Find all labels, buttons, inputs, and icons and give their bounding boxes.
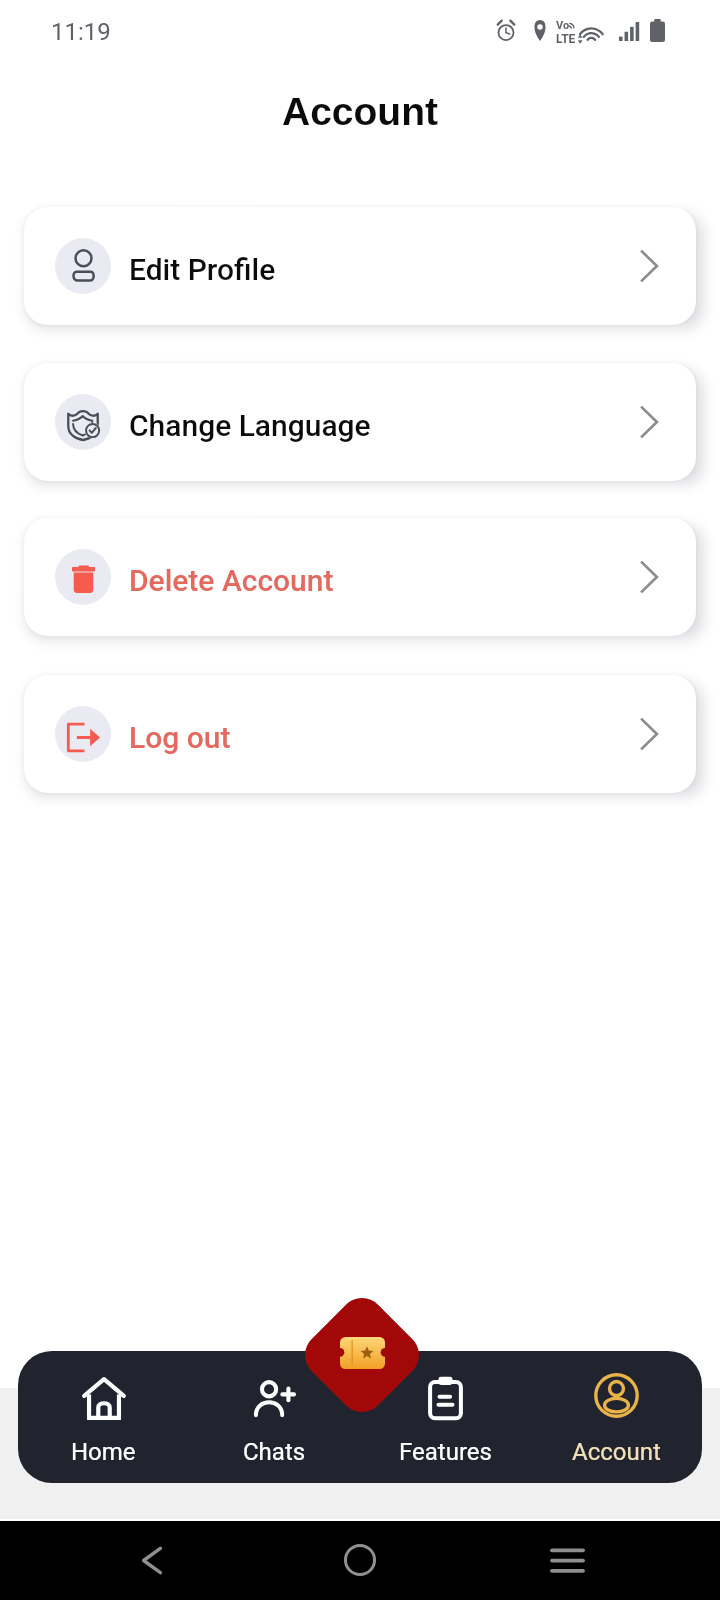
- button[interactable]: Features: [360, 1351, 531, 1483]
- staticText: 11:19: [51, 18, 111, 46]
- button[interactable]: Chats: [189, 1351, 360, 1483]
- button[interactable]: Log out: [24, 675, 696, 793]
- staticText: Features: [399, 1438, 492, 1466]
- staticText: Vo: [556, 19, 570, 32]
- other: Recent apps: [551, 1548, 584, 1573]
- staticText: Account: [572, 1438, 661, 1466]
- button[interactable]: Delete Account: [24, 518, 696, 636]
- staticText: Edit Profile: [129, 252, 276, 287]
- button[interactable]: Tickets: [295, 1288, 428, 1421]
- button[interactable]: Edit Profile: [24, 207, 696, 325]
- other: Home: [344, 1544, 376, 1576]
- button[interactable]: Account: [531, 1351, 702, 1483]
- staticText: Home: [71, 1438, 136, 1466]
- staticText: Chats: [243, 1438, 306, 1466]
- staticText: Change Language: [129, 408, 371, 443]
- staticText: Account: [282, 90, 438, 134]
- other: Back: [142, 1546, 162, 1575]
- button[interactable]: Home: [18, 1351, 189, 1483]
- button[interactable]: Change Language: [24, 363, 696, 481]
- staticText: LTE: [556, 32, 576, 46]
- staticText: Delete Account: [129, 563, 334, 598]
- staticText: Log out: [129, 720, 231, 755]
